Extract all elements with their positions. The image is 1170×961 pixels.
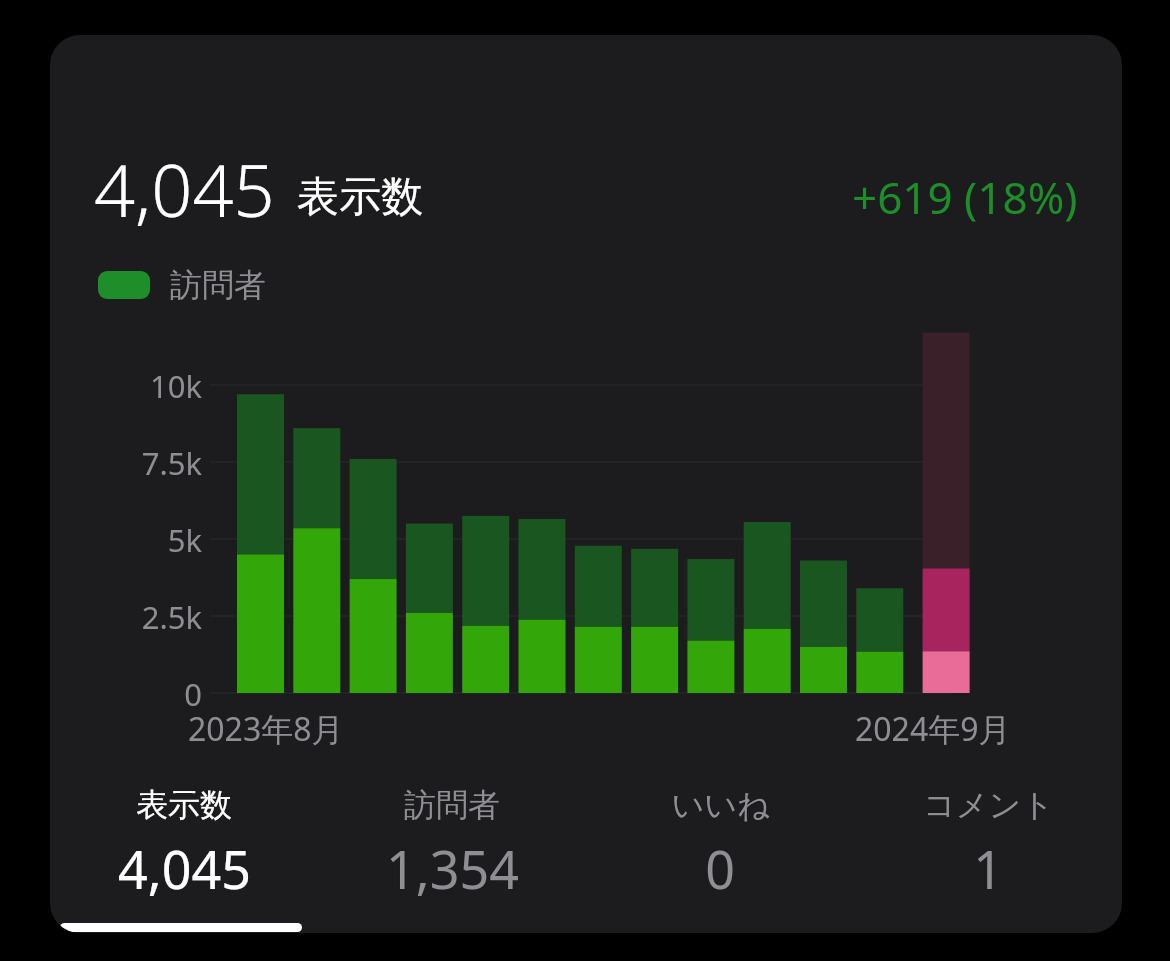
staticText: 表示数	[136, 785, 232, 825]
button[interactable]: コメント	[854, 785, 1122, 904]
staticText: 0	[705, 833, 735, 904]
staticText: 5k	[78, 519, 202, 561]
staticText: 4,045	[94, 140, 275, 238]
staticText: 10k	[78, 365, 202, 407]
button[interactable]: 4,045	[50, 35, 1122, 933]
staticText: 7.5k	[78, 442, 202, 484]
staticText: 0	[78, 673, 202, 715]
staticText: 2024年9月	[855, 707, 1011, 751]
button[interactable]: 表示数	[50, 785, 318, 904]
button[interactable]: 訪問者	[318, 785, 586, 904]
staticText: コメント	[923, 785, 1054, 825]
button[interactable]: 訪問者	[98, 265, 266, 305]
staticText: 4,045	[118, 833, 251, 904]
staticText: +619 (18%)	[852, 167, 1078, 227]
staticText: 表示数	[297, 171, 423, 224]
staticText: 訪問者	[170, 265, 266, 305]
staticText: 訪問者	[404, 785, 500, 825]
staticText: 1	[973, 833, 1003, 904]
button[interactable]: いいね	[586, 785, 854, 904]
staticText: 2.5k	[78, 596, 202, 638]
staticText: いいね	[671, 785, 770, 825]
staticText: 1,354	[386, 833, 519, 904]
staticText: 2023年8月	[188, 707, 344, 751]
